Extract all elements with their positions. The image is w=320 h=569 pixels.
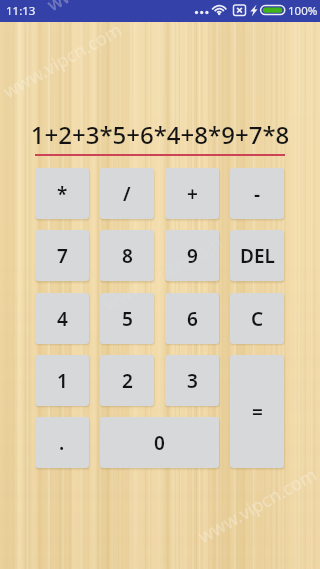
staticText: 2 <box>122 368 133 394</box>
button[interactable]: * <box>35 168 89 219</box>
button[interactable]: + <box>165 168 219 219</box>
staticText: DEL <box>240 243 275 269</box>
button[interactable]: 9 <box>165 230 219 281</box>
button[interactable]: 5 <box>100 293 154 344</box>
staticText: 1+2+3*5+6*4+8*9+7*8 <box>30 118 290 151</box>
button[interactable]: 2 <box>100 355 154 406</box>
staticText: * <box>57 181 68 207</box>
button[interactable]: / <box>100 168 154 219</box>
staticText: 9 <box>187 243 198 269</box>
staticText: / <box>123 181 131 207</box>
button[interactable]: 3 <box>165 355 219 406</box>
staticText: 4 <box>57 306 68 332</box>
staticText: www.vipcn.com <box>100 230 228 317</box>
staticText: 100% <box>288 3 318 19</box>
button[interactable]: 6 <box>165 293 219 344</box>
button[interactable]: C <box>230 293 284 344</box>
button[interactable]: 7 <box>35 230 89 281</box>
staticText: + <box>187 181 198 207</box>
staticText: C <box>251 306 264 332</box>
staticText: . <box>59 430 65 456</box>
button[interactable]: - <box>230 168 284 219</box>
button[interactable]: 4 <box>35 293 89 344</box>
button[interactable]: 8 <box>100 230 154 281</box>
staticText: 1 <box>57 368 68 394</box>
staticText: - <box>254 181 261 207</box>
staticText: 8 <box>122 243 133 269</box>
staticText: www.vipcn.com <box>194 462 320 549</box>
staticText: 7 <box>57 243 68 269</box>
staticText: www.vipcn.com <box>0 17 127 104</box>
staticText: 11:13 <box>6 3 36 19</box>
staticText: 3 <box>187 368 198 394</box>
staticText: = <box>252 399 263 425</box>
staticText: 5 <box>122 306 133 332</box>
staticText: 6 <box>187 306 198 332</box>
button[interactable]: = <box>230 355 284 468</box>
button[interactable]: . <box>35 417 89 468</box>
button[interactable]: 1 <box>35 355 89 406</box>
staticText: 0 <box>154 430 165 456</box>
staticText: www.vipcn.com <box>43 0 171 17</box>
button[interactable]: DEL <box>230 230 284 281</box>
button[interactable]: 0 <box>100 417 219 468</box>
